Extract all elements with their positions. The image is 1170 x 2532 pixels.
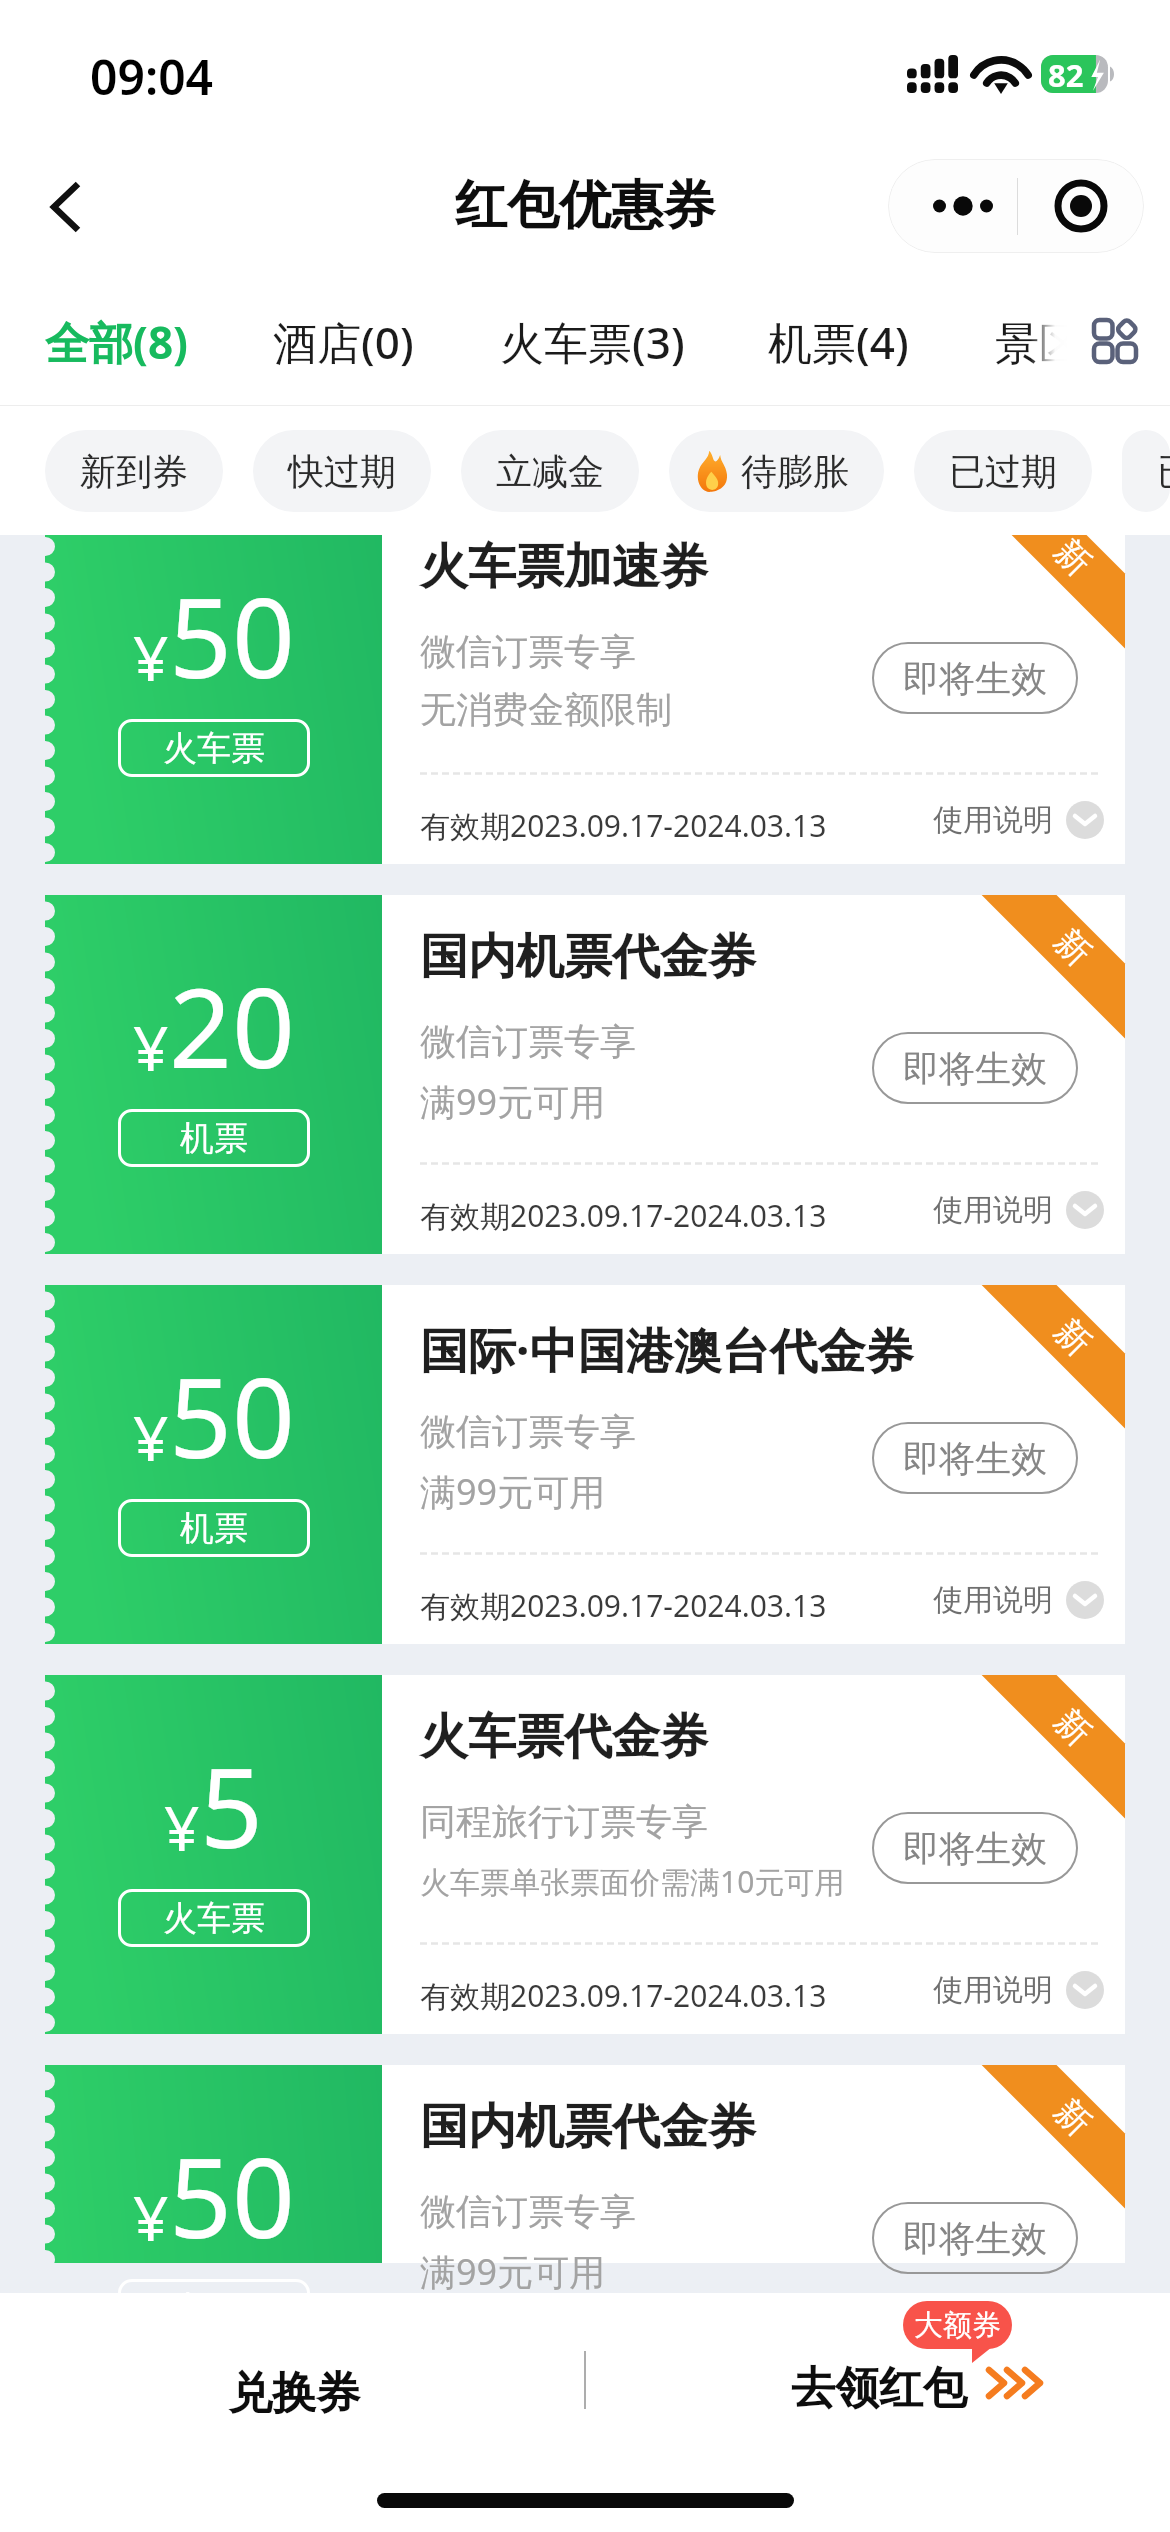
button[interactable]: 使用说明 — [933, 1946, 1104, 2034]
staticText: 去领红包 — [791, 2361, 967, 2416]
staticText: 待膨胀 — [741, 449, 849, 494]
button[interactable]: 使用说明 — [933, 776, 1104, 864]
staticText: 火车票单张票面价需满10元可用 — [420, 1861, 845, 1902]
button[interactable]: 去领红包 — [760, 2323, 1070, 2463]
button[interactable]: 火车票(3) — [500, 278, 685, 406]
staticText: 兑换券 — [228, 2366, 360, 2421]
staticText: 满99元可用 — [420, 2247, 606, 2293]
staticText: 新 — [1046, 1700, 1100, 1755]
staticText: 新到券 — [80, 449, 188, 494]
button[interactable]: Close mini program — [1018, 159, 1144, 253]
staticText: 大额券 — [914, 2307, 1001, 2344]
button[interactable]: More options — [888, 159, 1017, 253]
button[interactable]: 机票(4) — [768, 278, 909, 406]
button[interactable]: 使用说明 — [933, 1166, 1104, 1254]
staticText: 微信订票专享 — [420, 1409, 636, 1454]
staticText: 新 — [1046, 920, 1100, 975]
button[interactable]: 即将生效 — [872, 2202, 1078, 2274]
staticText: 有效期2023.09.17-2024.03.13 — [420, 1585, 827, 1626]
button[interactable]: 立减金 — [461, 430, 639, 512]
button[interactable]: 即将生效 — [872, 1422, 1078, 1494]
staticText: 景区(2) — [995, 312, 1136, 372]
staticText: 微信订票专享 — [420, 2189, 636, 2234]
button[interactable]: ¥ — [45, 1285, 1125, 1644]
button[interactable]: 已过期 — [914, 430, 1092, 512]
staticText: 有效期2023.09.17-2024.03.13 — [420, 1195, 827, 1236]
staticText: 使用说明 — [933, 1191, 1053, 1229]
staticText: 即将生效 — [903, 656, 1047, 701]
staticText: 82 — [1048, 54, 1084, 92]
button[interactable]: ¥ — [45, 895, 1125, 1254]
button[interactable]: ¥ — [45, 1675, 1125, 2034]
staticText: 满99元可用 — [420, 1077, 606, 1126]
button[interactable]: 即将生效 — [872, 1812, 1078, 1884]
button[interactable]: ¥ — [45, 2065, 1125, 2263]
staticText: 即将生效 — [903, 1046, 1047, 1091]
staticText: 20 — [169, 950, 295, 1100]
staticText: 微信订票专享 — [420, 1019, 636, 1064]
staticText: 满99元可用 — [420, 1467, 606, 1516]
staticText: 新 — [1046, 535, 1100, 585]
staticText: 50 — [169, 560, 295, 710]
staticText: 国内机票代金券 — [420, 927, 756, 987]
button[interactable]: 新到券 — [45, 430, 223, 512]
staticText: 新 — [1046, 1310, 1100, 1365]
staticText: 使用说明 — [933, 1971, 1053, 2009]
button[interactable]: ¥ — [45, 535, 1125, 864]
staticText: 酒店(0) — [273, 312, 414, 372]
button[interactable]: 全部(8) — [45, 278, 188, 406]
button[interactable]: 酒店(0) — [273, 278, 414, 406]
staticText: 即将生效 — [903, 2216, 1047, 2261]
staticText: 同程旅行订票专享 — [420, 1799, 708, 1844]
staticText: ¥ — [133, 615, 169, 699]
button[interactable]: 即将生效 — [872, 642, 1078, 714]
staticText: 国内机票代金券 — [420, 2097, 756, 2157]
staticText: 有效期2023.09.17-2024.03.13 — [420, 805, 827, 846]
staticText: 使用说明 — [933, 801, 1053, 839]
staticText: 火车票 — [163, 1897, 265, 1940]
staticText: 火车票(3) — [500, 312, 685, 372]
staticText: 使用说明 — [933, 1581, 1053, 1619]
button[interactable]: 使用说明 — [933, 1556, 1104, 1644]
staticText: 新 — [1046, 2090, 1100, 2145]
staticText: 机票(4) — [768, 312, 909, 372]
staticText: 立减金 — [496, 449, 604, 494]
staticText: 火车票 — [163, 727, 265, 770]
button[interactable]: 已使用 — [1122, 430, 1170, 512]
button[interactable]: 即将生效 — [872, 1032, 1078, 1104]
staticText: 无消费金额限制 — [420, 687, 672, 732]
staticText: ¥ — [133, 2175, 169, 2259]
staticText: 5 — [200, 1730, 263, 1880]
staticText: ¥ — [164, 1785, 200, 1869]
staticText: 即将生效 — [903, 1826, 1047, 1871]
staticText: 机票 — [180, 1117, 248, 1160]
button[interactable]: 快过期 — [253, 430, 431, 512]
button[interactable]: Back — [21, 162, 111, 252]
staticText: 国际·中国港澳台代金券 — [420, 1317, 914, 1383]
staticText: 火车票加速券 — [420, 537, 708, 597]
staticText: 快过期 — [288, 449, 396, 494]
staticText: 50 — [169, 2120, 295, 2270]
staticText: 09:04 — [90, 44, 214, 109]
staticText: 50 — [169, 1340, 295, 1490]
button[interactable]: All categories — [1060, 278, 1170, 406]
staticText: 机票 — [180, 1507, 248, 1550]
staticText: 全部(8) — [45, 312, 188, 372]
staticText: 即将生效 — [903, 1436, 1047, 1481]
staticText: 红包优惠券 — [455, 173, 715, 239]
button[interactable]: 景区(2) — [995, 278, 1136, 406]
button[interactable]: 待膨胀 — [669, 430, 884, 512]
staticText: 有效期2023.09.17-2024.03.13 — [420, 1975, 827, 2016]
staticText: 已过期 — [949, 449, 1057, 494]
staticText: 火车票代金券 — [420, 1707, 708, 1767]
button[interactable]: 兑换券 — [120, 2323, 468, 2463]
staticText: 微信订票专享 — [420, 629, 636, 674]
staticText: ¥ — [133, 1005, 169, 1089]
staticText: ¥ — [133, 1395, 169, 1479]
